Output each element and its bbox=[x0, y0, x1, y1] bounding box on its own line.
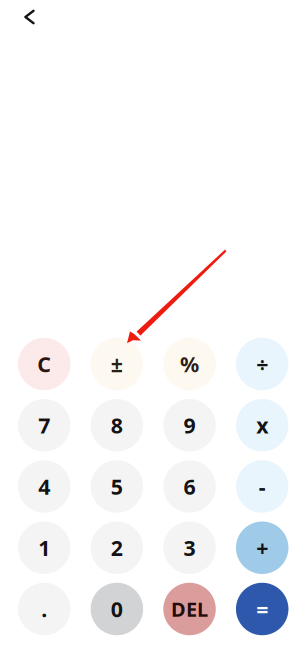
staticText: ÷ bbox=[256, 350, 268, 378]
button[interactable]: C bbox=[18, 338, 70, 390]
staticText: 1 bbox=[38, 534, 50, 562]
staticText: DEL bbox=[171, 596, 208, 622]
button[interactable]: 7 bbox=[18, 399, 70, 451]
button[interactable]: 8 bbox=[91, 399, 143, 451]
staticText: ± bbox=[111, 350, 123, 378]
staticText: C bbox=[37, 350, 51, 378]
staticText: 3 bbox=[183, 534, 195, 562]
staticText: + bbox=[256, 534, 268, 562]
staticText: 9 bbox=[183, 411, 195, 439]
button[interactable]: 6 bbox=[163, 460, 216, 513]
button[interactable]: 0 bbox=[91, 583, 143, 635]
staticText: 2 bbox=[111, 534, 123, 562]
button[interactable]: - bbox=[236, 460, 288, 513]
button[interactable]: 3 bbox=[163, 521, 216, 574]
staticText: 7 bbox=[38, 411, 50, 439]
staticText: - bbox=[259, 472, 266, 501]
button[interactable]: 4 bbox=[18, 460, 70, 513]
staticText: % bbox=[180, 350, 199, 378]
staticText: 4 bbox=[38, 472, 50, 501]
button[interactable]: DEL bbox=[163, 583, 216, 635]
button[interactable]: = bbox=[236, 583, 288, 635]
button[interactable]: % bbox=[163, 338, 216, 390]
staticText: = bbox=[256, 595, 268, 623]
button[interactable]: ± bbox=[91, 338, 143, 390]
staticText: . bbox=[41, 595, 47, 623]
button[interactable]: 9 bbox=[163, 399, 216, 451]
button[interactable]: 2 bbox=[91, 521, 143, 574]
button[interactable]: + bbox=[236, 521, 288, 574]
button[interactable]: 5 bbox=[91, 460, 143, 513]
button[interactable]: Back bbox=[11, 0, 55, 40]
staticText: 8 bbox=[111, 411, 123, 439]
button[interactable]: ÷ bbox=[236, 338, 288, 390]
button[interactable]: . bbox=[18, 583, 70, 635]
staticText: 5 bbox=[111, 472, 123, 501]
button[interactable]: 1 bbox=[18, 521, 70, 574]
staticText: 0 bbox=[111, 595, 123, 623]
button[interactable]: x bbox=[236, 399, 288, 451]
staticText: 6 bbox=[183, 472, 195, 501]
staticText: x bbox=[256, 411, 268, 439]
